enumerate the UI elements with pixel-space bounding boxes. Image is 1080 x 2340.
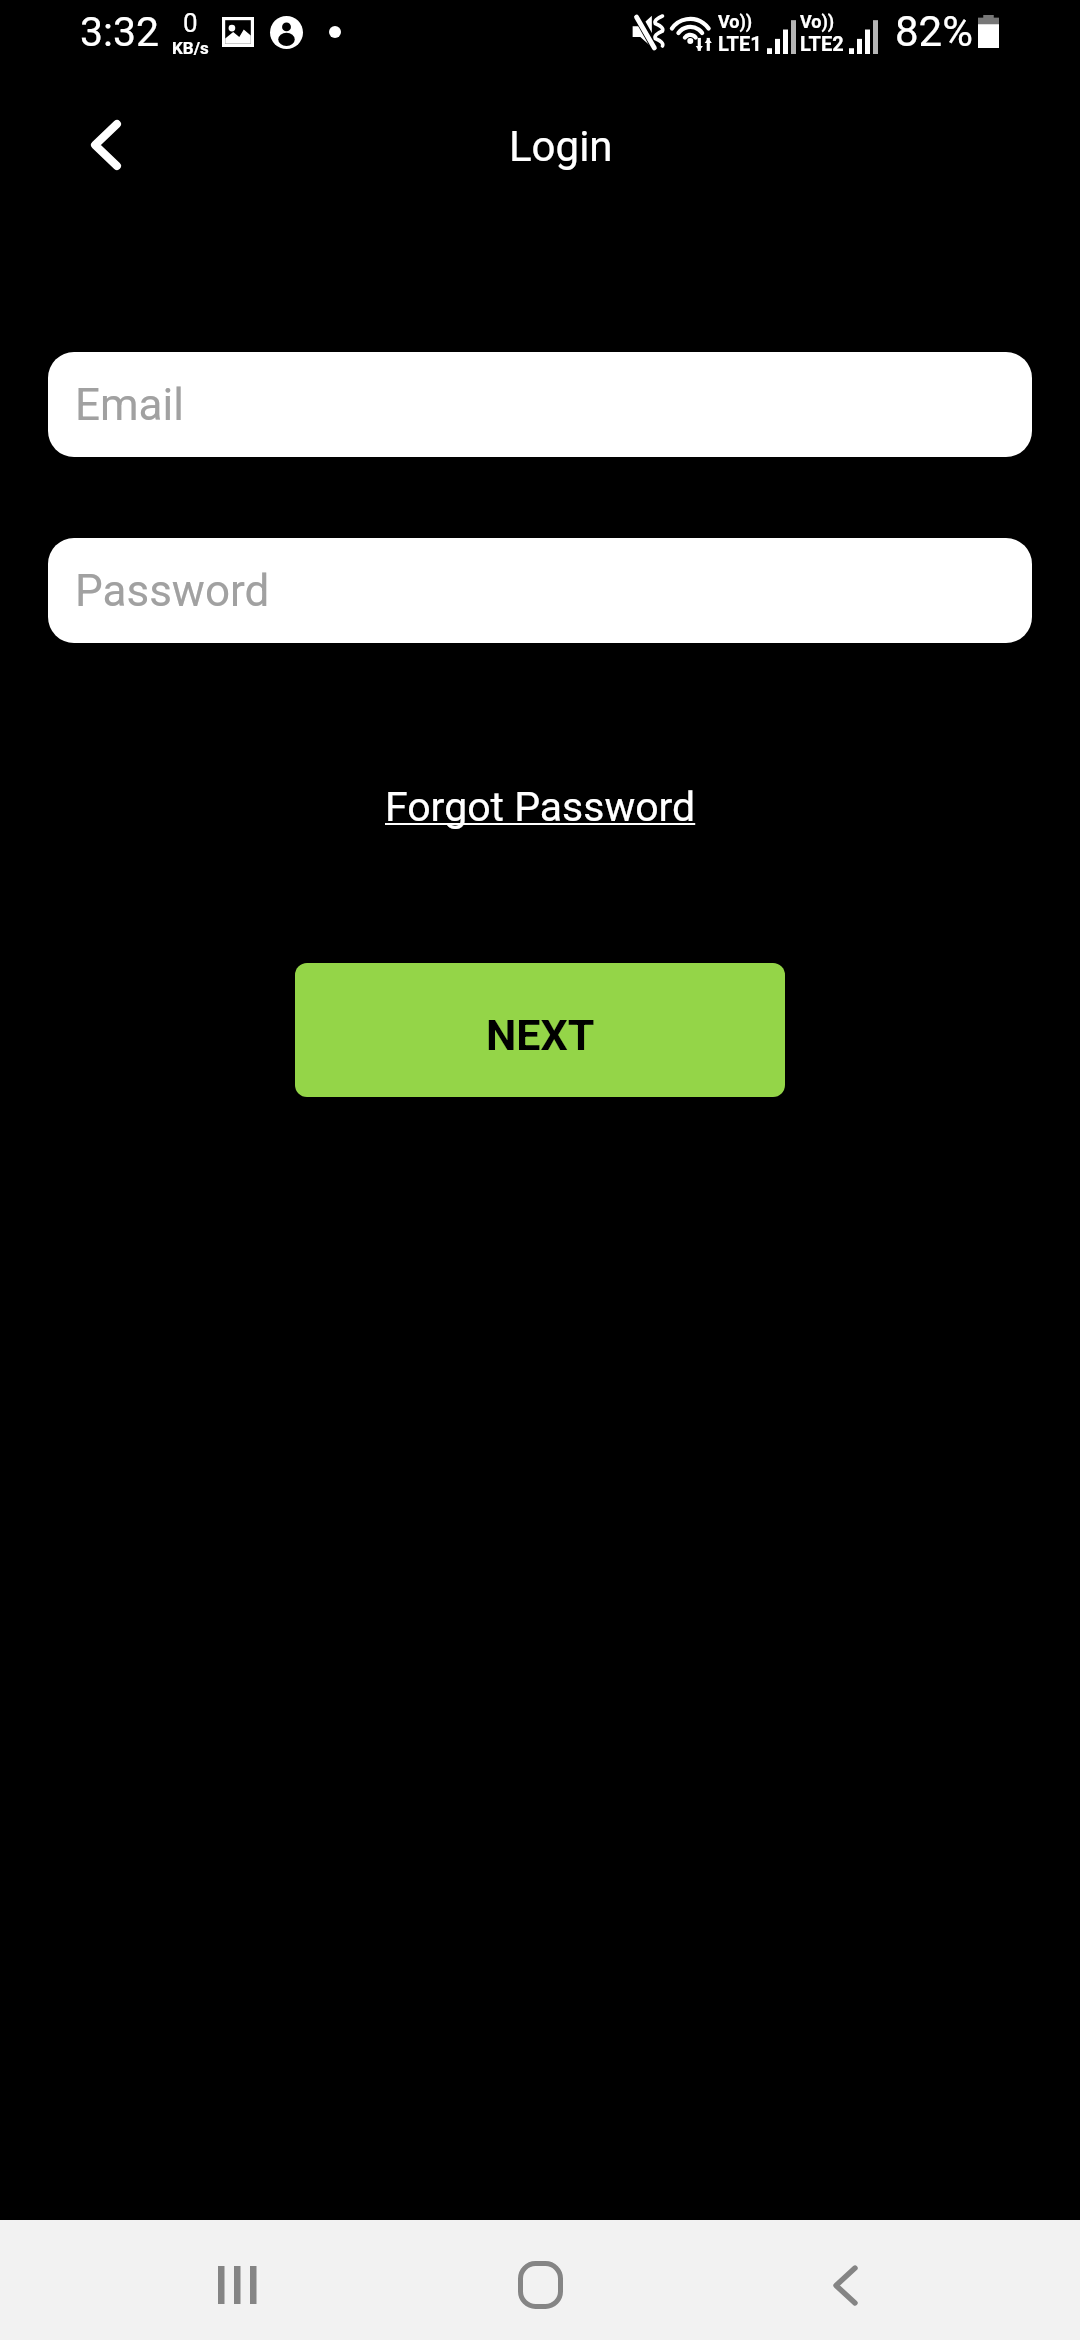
button[interactable]: Password <box>48 538 1032 643</box>
button[interactable]: NEXT <box>295 963 785 1097</box>
staticText: KB/s <box>172 38 209 58</box>
button[interactable]: Forgot Password <box>375 777 706 837</box>
button[interactable]: Recent apps <box>177 2220 297 2340</box>
staticText: Login <box>509 122 613 171</box>
staticText: Vo)) <box>718 11 753 32</box>
staticText: LTE2 <box>800 32 844 55</box>
staticText: Password <box>75 565 270 617</box>
staticText: 82% <box>895 7 973 56</box>
button[interactable]: Back <box>58 111 154 179</box>
staticText: 3:32 <box>80 8 160 56</box>
staticText: 0 <box>183 8 198 38</box>
staticText: Email <box>75 379 184 431</box>
button[interactable]: Back <box>785 2220 905 2340</box>
staticText: Forgot Password <box>385 783 696 831</box>
button[interactable]: Home <box>480 2220 600 2340</box>
staticText: Vo)) <box>800 11 835 32</box>
button[interactable]: Email <box>48 352 1032 457</box>
staticText: NEXT <box>486 1010 595 1060</box>
staticText: LTE1 <box>718 32 762 55</box>
